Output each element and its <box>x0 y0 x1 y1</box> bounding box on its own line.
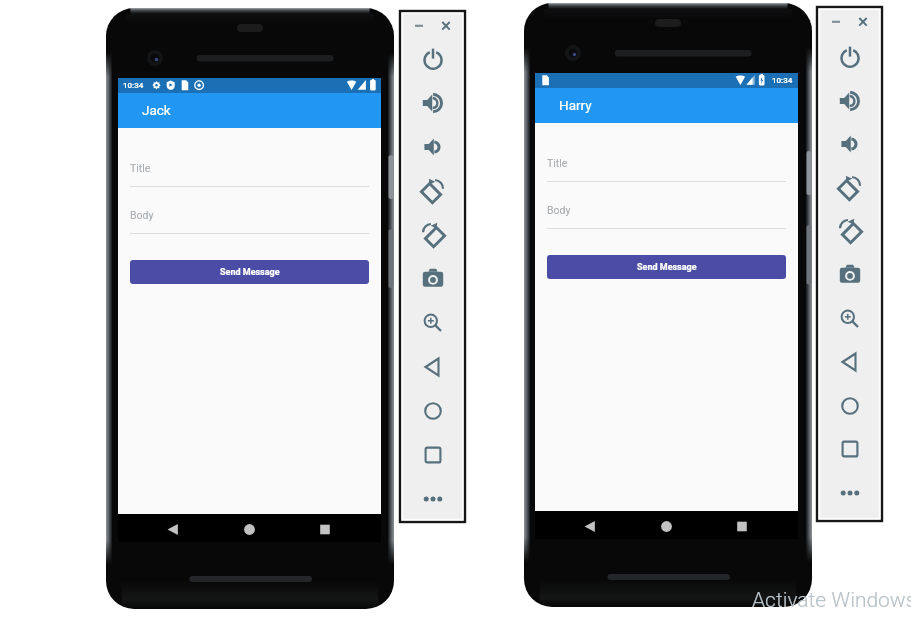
staticText: Harry <box>559 97 592 113</box>
button[interactable]: Back <box>416 350 450 384</box>
staticText: Body <box>547 204 571 216</box>
button[interactable]: Overview <box>416 438 450 472</box>
button[interactable]: Back <box>833 345 867 379</box>
button[interactable]: Volume down <box>833 127 867 161</box>
button[interactable]: Volume down <box>416 130 450 164</box>
button[interactable]: Rotate right <box>833 214 867 248</box>
button[interactable]: Rotate left <box>833 171 867 205</box>
button[interactable]: Body <box>547 203 786 229</box>
staticText: Jack <box>142 102 171 118</box>
button[interactable]: More <box>416 482 450 516</box>
button[interactable]: Screenshot <box>833 258 867 292</box>
button[interactable]: Screenshot <box>416 262 450 296</box>
button[interactable]: Jack <box>118 93 381 128</box>
button[interactable]: Overview <box>833 432 867 466</box>
button[interactable]: Rotate left <box>416 174 450 208</box>
button[interactable]: Title <box>130 161 369 187</box>
button[interactable]: Body <box>130 208 369 234</box>
button[interactable]: Volume up <box>416 86 450 120</box>
staticText: Send Message <box>220 267 280 278</box>
button[interactable]: Zoom <box>416 306 450 340</box>
button[interactable]: Power <box>833 40 867 74</box>
button[interactable]: Power <box>416 42 450 76</box>
button[interactable]: Title <box>547 156 786 182</box>
button[interactable]: Send Message <box>547 255 786 279</box>
staticText: Activate Windows <box>752 588 911 613</box>
staticText: Title <box>130 162 151 174</box>
button[interactable]: Harry <box>535 88 798 123</box>
button[interactable]: More <box>833 476 867 510</box>
staticText: 10:34 <box>772 76 793 85</box>
staticText: Title <box>547 157 568 169</box>
button[interactable]: Home <box>833 389 867 423</box>
staticText: 10:34 <box>123 81 144 90</box>
staticText: Body <box>130 209 154 221</box>
staticText: Send Message <box>637 262 697 273</box>
button[interactable]: Home <box>416 394 450 428</box>
button[interactable]: Volume up <box>833 84 867 118</box>
button[interactable]: Rotate right <box>416 218 450 252</box>
button[interactable]: Send Message <box>130 260 369 284</box>
button[interactable]: Zoom <box>833 302 867 336</box>
